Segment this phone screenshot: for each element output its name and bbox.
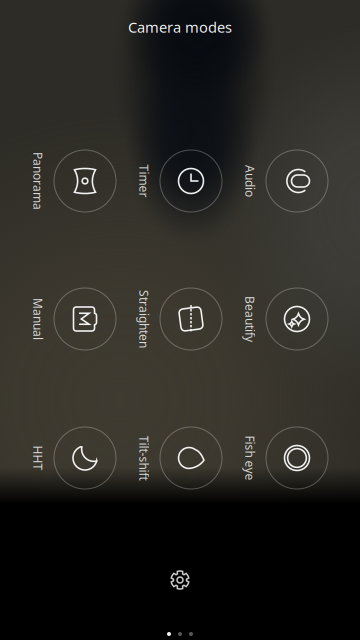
staticText: Audio xyxy=(234,173,266,189)
staticText: Tilt-shift xyxy=(121,450,166,466)
button[interactable] xyxy=(160,427,222,489)
staticText: Camera modes xyxy=(128,17,232,37)
staticText: Beautify xyxy=(227,311,273,327)
button[interactable] xyxy=(266,288,328,350)
button[interactable] xyxy=(54,427,116,489)
button[interactable] xyxy=(54,288,116,350)
staticText: Timer xyxy=(127,173,160,189)
staticText: Manual xyxy=(17,311,59,327)
button[interactable] xyxy=(160,288,222,350)
staticText: Straighten xyxy=(115,311,173,327)
staticText: Fish eye xyxy=(227,450,272,466)
staticText: Panorama xyxy=(9,173,67,189)
button[interactable] xyxy=(266,427,328,489)
button[interactable]: Settings xyxy=(158,558,202,602)
button[interactable] xyxy=(160,150,222,212)
button[interactable] xyxy=(54,150,116,212)
staticText: HHT xyxy=(25,450,50,466)
button[interactable] xyxy=(266,150,328,212)
